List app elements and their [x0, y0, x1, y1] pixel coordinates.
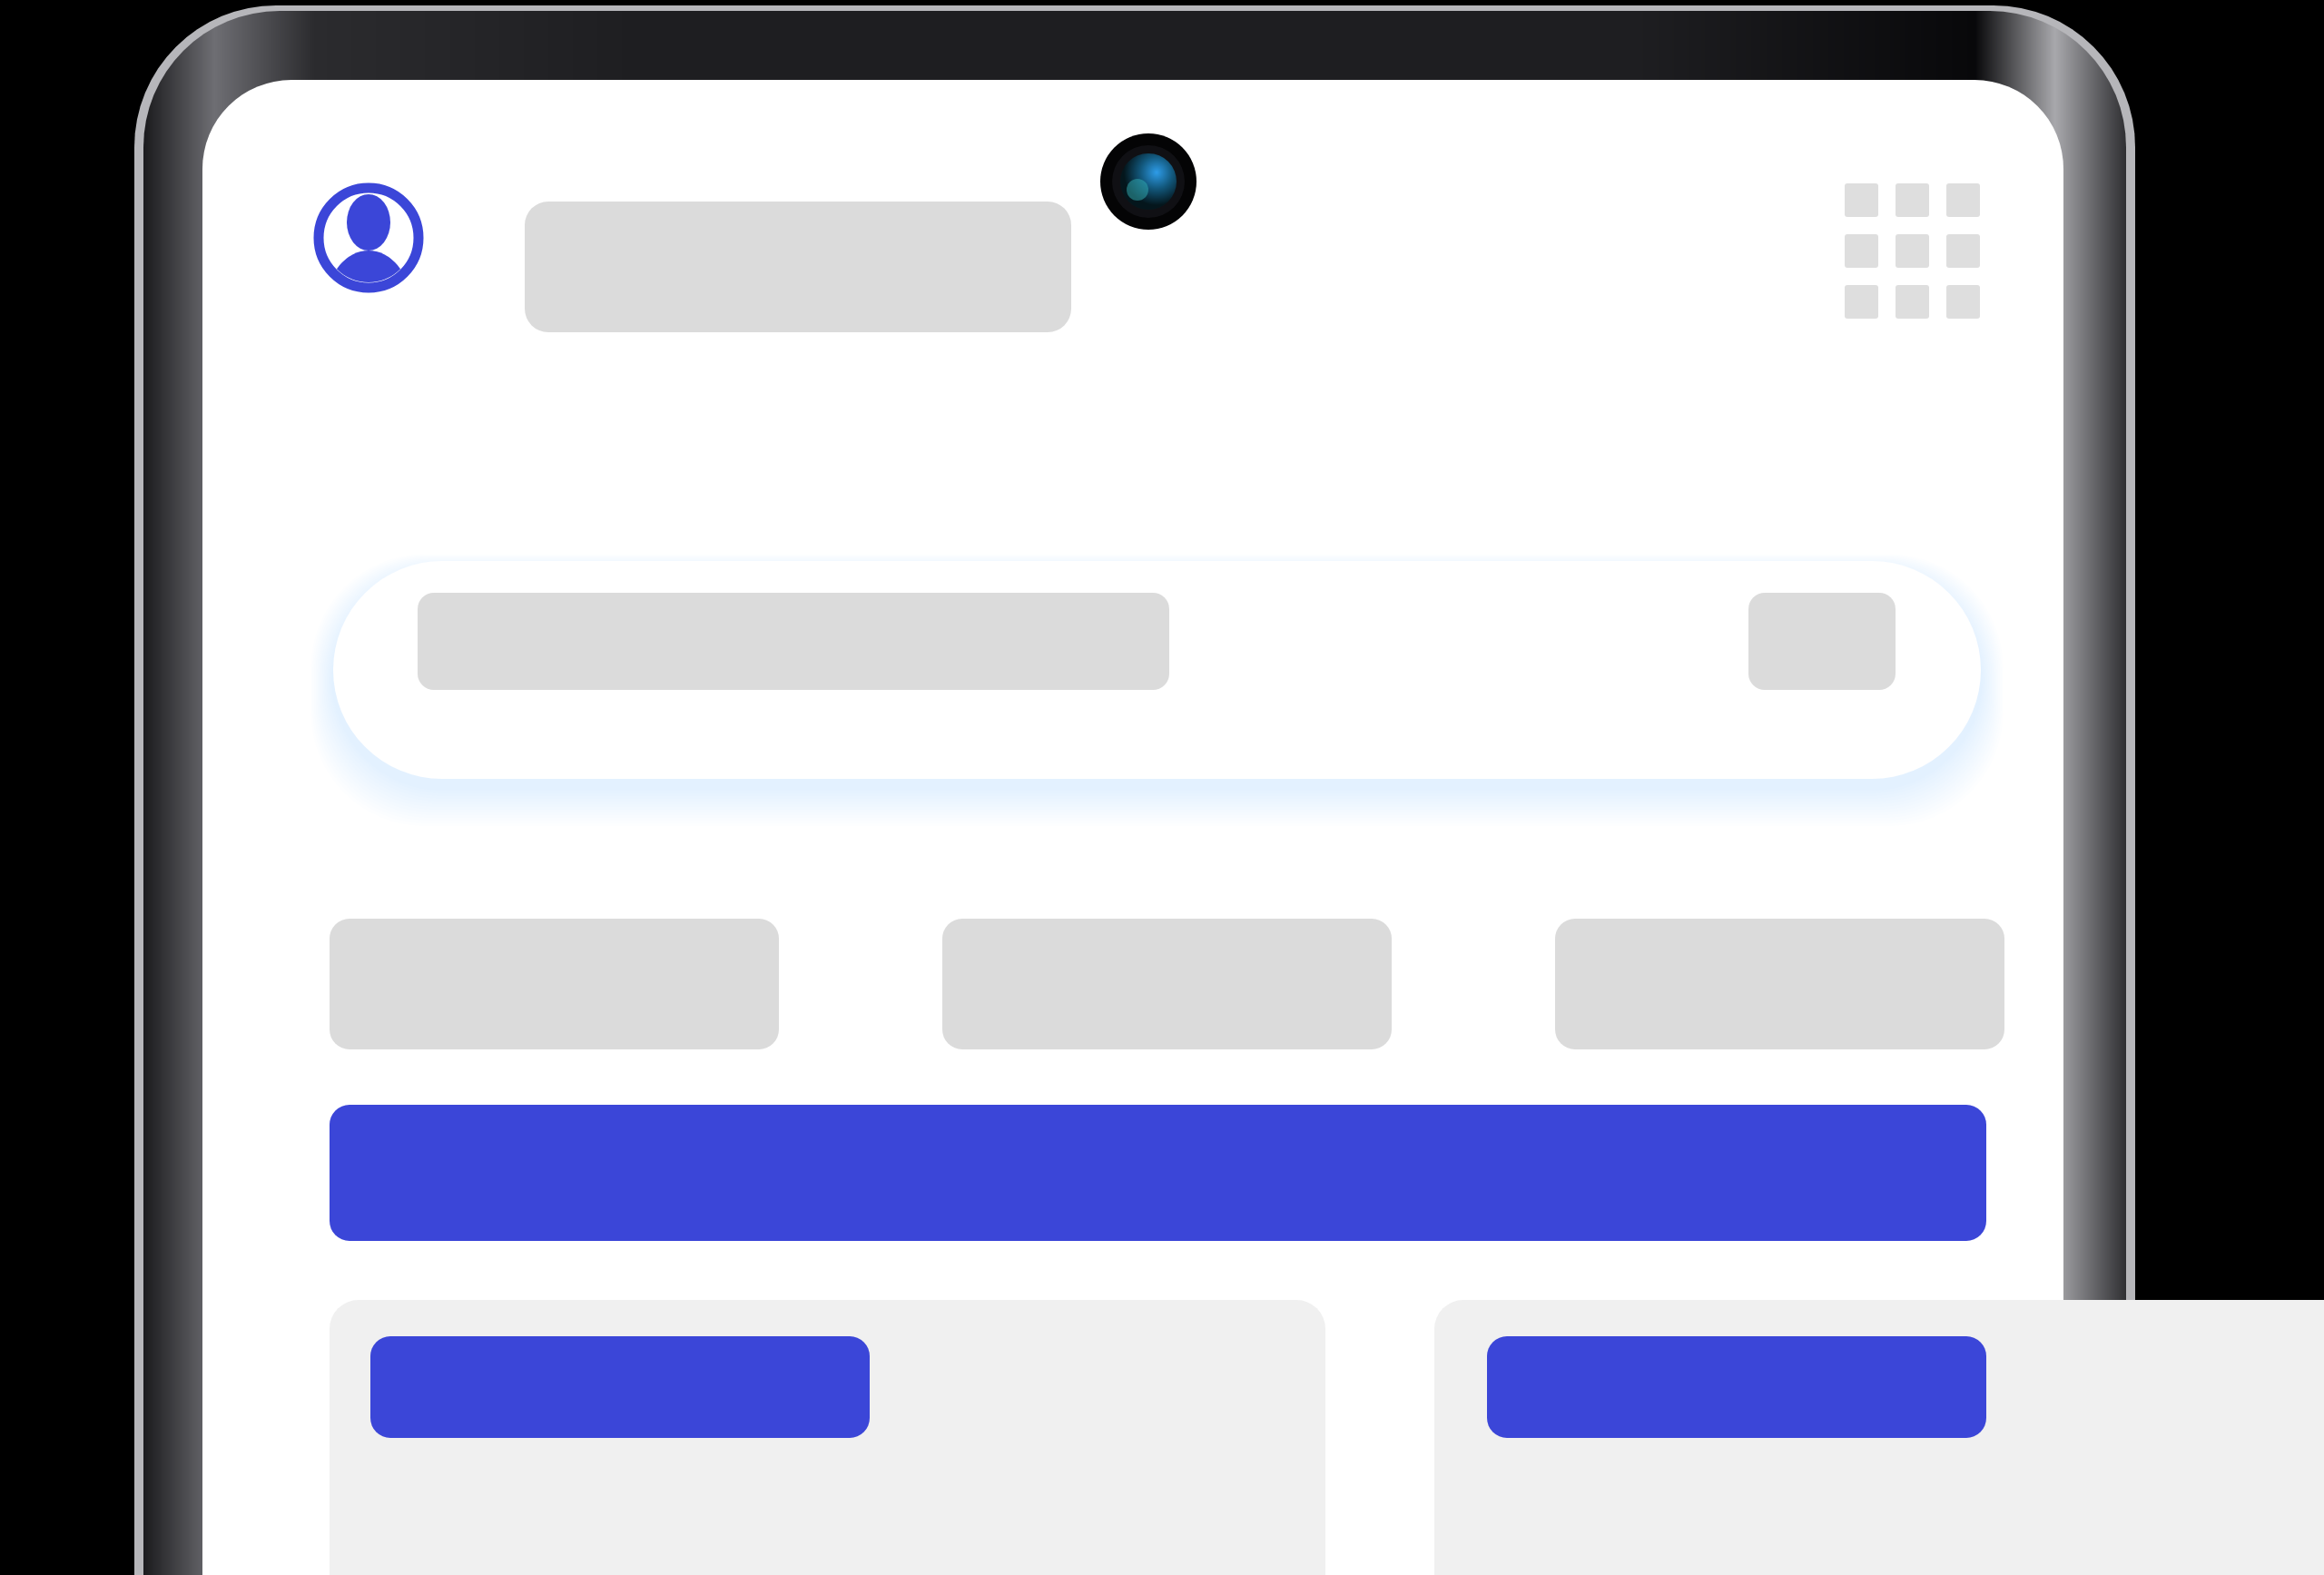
button[interactable]: Profile: [318, 187, 421, 290]
button[interactable]: Primary action: [330, 1105, 1986, 1241]
button[interactable]: Search: [333, 561, 1981, 779]
button[interactable]: Apps grid: [1834, 172, 1994, 332]
button[interactable]: Card one: [330, 1300, 1325, 1575]
button[interactable]: Filter two: [942, 919, 1392, 1049]
button[interactable]: Card two: [1434, 1300, 2324, 1575]
